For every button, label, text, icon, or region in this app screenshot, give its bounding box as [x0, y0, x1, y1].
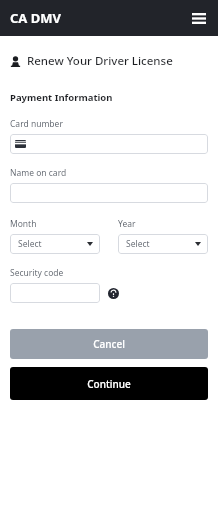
staticText: Select: [126, 238, 150, 250]
staticText: Renew Your Driver License: [27, 53, 173, 69]
button[interactable]: Continue: [10, 367, 208, 400]
staticText: Continue: [87, 377, 131, 391]
staticText: CA DMV: [10, 9, 61, 27]
staticText: Card number: [10, 118, 63, 130]
staticText: Month: [10, 218, 37, 230]
button[interactable]: Security code help: [106, 286, 120, 300]
button[interactable]: Menu: [187, 6, 211, 30]
staticText: Year: [118, 218, 136, 230]
staticText: Payment Information: [10, 91, 113, 104]
staticText: Security code: [10, 267, 64, 279]
button[interactable]: [10, 183, 208, 203]
button[interactable]: Cancel: [10, 329, 208, 359]
staticText: Name on card: [10, 167, 67, 179]
button[interactable]: Select: [10, 234, 100, 254]
button[interactable]: [10, 283, 100, 303]
button[interactable]: Select: [118, 234, 208, 254]
staticText: Cancel: [93, 337, 125, 351]
button[interactable]: [10, 134, 208, 154]
staticText: Select: [18, 238, 42, 250]
